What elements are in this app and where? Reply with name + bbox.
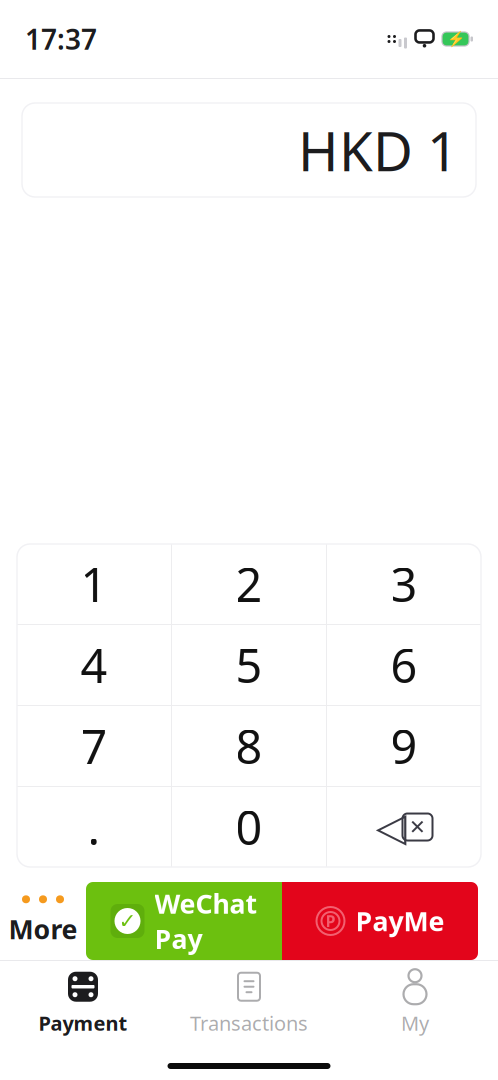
button[interactable]: P <box>282 882 478 960</box>
staticText: 0 <box>235 796 262 858</box>
staticText: 2 <box>235 553 262 615</box>
staticText: 8 <box>235 715 262 777</box>
button[interactable]: 1 <box>17 544 171 624</box>
staticText: 3 <box>390 553 417 615</box>
button[interactable]: My <box>332 973 498 1035</box>
staticText: ⚡ <box>446 31 464 47</box>
staticText: 17:37 <box>25 20 97 58</box>
button[interactable]: 5 <box>172 625 326 705</box>
button[interactable]: Amount HKD 1 <box>22 103 476 197</box>
button[interactable]: 0 <box>172 787 326 867</box>
staticText: ◁ <box>375 804 406 850</box>
button[interactable]: ✓ <box>86 882 282 960</box>
staticText: My <box>401 1010 429 1036</box>
staticText: . <box>87 796 100 858</box>
button[interactable]: 3 <box>327 544 481 624</box>
staticText: P <box>325 910 335 932</box>
staticText: Payment <box>38 1010 127 1036</box>
button[interactable]: 4 <box>17 625 171 705</box>
button[interactable]: Payment <box>0 973 166 1035</box>
staticText: 6 <box>390 634 417 696</box>
button[interactable]: More <box>0 882 86 960</box>
staticText: ✓ <box>118 909 136 933</box>
button[interactable]: Delete <box>327 787 481 867</box>
button[interactable]: . <box>17 787 171 867</box>
button[interactable]: 6 <box>327 625 481 705</box>
staticText: More <box>8 911 77 947</box>
staticText: HKD 1 <box>298 114 458 186</box>
staticText: 4 <box>80 634 107 696</box>
button[interactable]: 7 <box>17 706 171 786</box>
staticText: 9 <box>390 715 417 777</box>
staticText: 5 <box>235 634 262 696</box>
staticText: Transactions <box>190 1010 308 1036</box>
button[interactable]: 9 <box>327 706 481 786</box>
button[interactable]: 8 <box>172 706 326 786</box>
button[interactable]: 2 <box>172 544 326 624</box>
staticText: WeChat Pay <box>154 886 257 956</box>
staticText: 7 <box>80 715 107 777</box>
button[interactable]: Transactions <box>166 973 332 1035</box>
staticText: 1 <box>80 553 107 615</box>
staticText: ✕ <box>409 816 426 838</box>
staticText: PayMe <box>355 903 444 939</box>
